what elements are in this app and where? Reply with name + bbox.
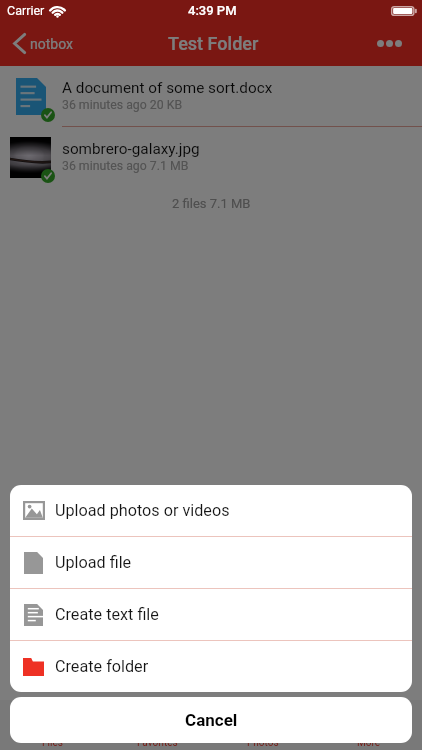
staticText: More [357, 737, 381, 749]
staticText: Upload photos or videos [55, 501, 230, 520]
staticText: Favorites [137, 737, 178, 749]
staticText: Create text file [55, 605, 159, 624]
staticText: Create folder [55, 657, 149, 676]
button[interactable]: Photos [210, 700, 316, 750]
staticText: Test Folder [168, 33, 259, 54]
staticText: Cancel [185, 710, 238, 730]
staticText: A document of some sort.docx [62, 79, 273, 97]
staticText: 4:39 PM [188, 3, 237, 18]
button[interactable]: Create folder [10, 641, 412, 692]
button[interactable]: Create text file [10, 589, 412, 640]
staticText: 36 minutes ago 20 KB [62, 98, 183, 112]
button[interactable]: sombrero-galaxy.jpg [0, 127, 422, 187]
staticText: Files [42, 737, 63, 749]
button[interactable]: Cancel [10, 697, 412, 743]
button[interactable]: More options [355, 28, 422, 59]
staticText: Photos [247, 737, 279, 749]
button[interactable]: Upload file [10, 537, 412, 588]
staticText: Upload file [55, 553, 132, 572]
button[interactable]: Favorites [105, 700, 210, 750]
button[interactable]: More [316, 700, 422, 750]
button[interactable]: Files [0, 700, 105, 750]
staticText: sombrero-galaxy.jpg [62, 140, 200, 158]
button[interactable]: notbox [0, 25, 83, 60]
staticText: 36 minutes ago 7.1 MB [62, 159, 189, 173]
button[interactable]: Upload photos or videos [10, 485, 412, 536]
staticText: 2 files 7.1 MB [172, 196, 251, 211]
staticText: notbox [30, 36, 73, 52]
staticText: Carrier [7, 3, 45, 18]
button[interactable]: A document of some sort.docx [0, 66, 422, 126]
